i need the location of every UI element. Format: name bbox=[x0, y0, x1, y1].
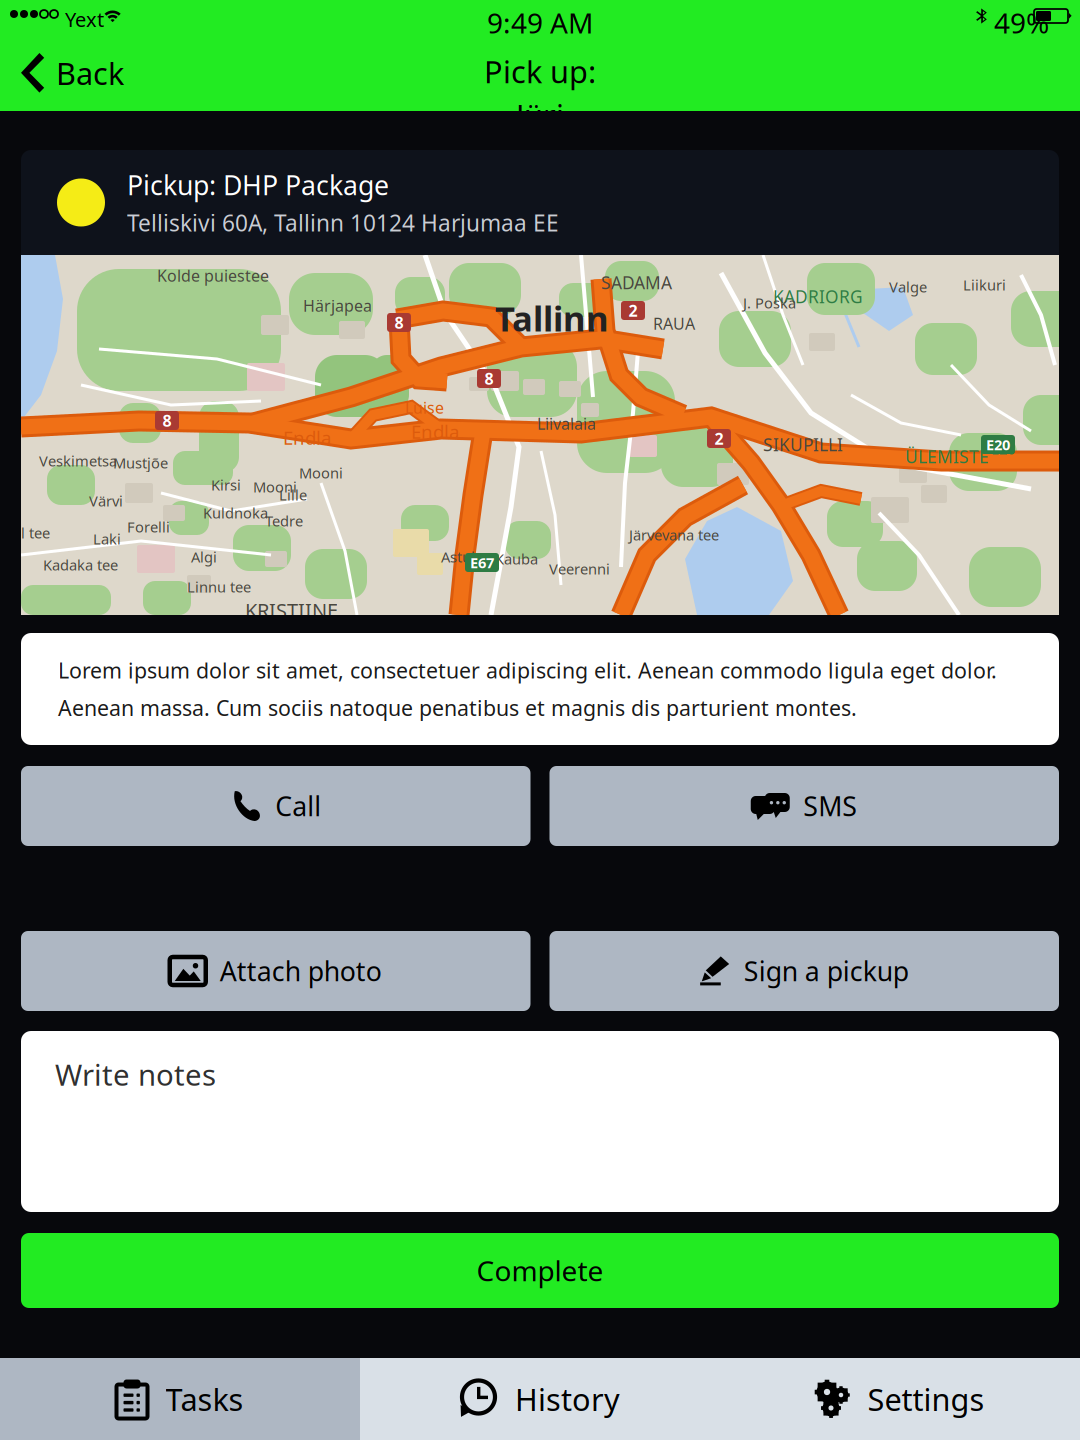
staticText: Call bbox=[275, 788, 321, 824]
staticText: Kauba bbox=[495, 549, 538, 568]
staticText: 8 bbox=[162, 410, 171, 431]
staticText: Pick up: bbox=[484, 51, 596, 92]
staticText: 8 bbox=[394, 312, 403, 333]
staticText: Pickup: DHP Package bbox=[127, 167, 389, 203]
button[interactable]: SMS bbox=[549, 766, 1059, 846]
staticText: Kuldnoka bbox=[203, 503, 268, 522]
staticText: Jüri bbox=[516, 95, 564, 135]
staticText: Järvevana tee bbox=[629, 525, 719, 544]
staticText: Astula bbox=[441, 547, 483, 566]
staticText: RAUA bbox=[653, 313, 695, 334]
button[interactable]: Back bbox=[0, 42, 148, 104]
staticText: Mustjõe bbox=[113, 453, 168, 472]
staticText: Lorem ipsum dolor sit amet, consectetuer… bbox=[58, 656, 997, 722]
staticText: J. Poska bbox=[743, 293, 796, 312]
staticText: Värvi bbox=[89, 491, 123, 510]
button[interactable]: History bbox=[360, 1358, 720, 1440]
staticText: Kadaka tee bbox=[43, 555, 118, 574]
staticText: Algi bbox=[191, 547, 217, 566]
staticText: Valge bbox=[889, 277, 927, 296]
button[interactable]: Sign a pickup bbox=[549, 931, 1059, 1011]
staticText: History bbox=[515, 1379, 620, 1419]
staticText: Luise bbox=[405, 397, 444, 418]
staticText: 2 bbox=[714, 428, 723, 449]
staticText: ÜLEMISTE bbox=[905, 445, 989, 468]
staticText: 9:49 AM bbox=[487, 4, 593, 41]
staticText: Kolde puiestee bbox=[157, 265, 269, 286]
button[interactable]: Settings bbox=[720, 1358, 1080, 1440]
staticText: E20 bbox=[986, 435, 1010, 454]
staticText: Endla bbox=[283, 425, 331, 450]
staticText: Mooni bbox=[299, 463, 343, 482]
staticText: Veerenni bbox=[549, 559, 610, 578]
staticText: Endla bbox=[411, 419, 459, 444]
staticText: KRISTIINE bbox=[245, 597, 338, 624]
staticText: Tallinn bbox=[495, 295, 609, 341]
staticText: Lille bbox=[279, 485, 307, 504]
staticText: Telliskivi 60A, Tallinn 10124 Harjumaa E… bbox=[127, 208, 559, 238]
staticText: Liivalaia bbox=[537, 413, 596, 434]
staticText: SADAMA bbox=[601, 271, 672, 294]
staticText: Yext bbox=[65, 6, 104, 33]
staticText: 8 bbox=[484, 368, 493, 389]
staticText: Complete bbox=[476, 1252, 603, 1289]
staticText: Forelli bbox=[127, 517, 170, 536]
staticText: Tasks bbox=[165, 1379, 243, 1419]
staticText: Linnu tee bbox=[187, 577, 251, 596]
staticText: Laki bbox=[93, 529, 121, 548]
staticText: Attach photo bbox=[220, 953, 382, 989]
staticText: 49% bbox=[994, 4, 1049, 41]
staticText: Kirsi bbox=[211, 475, 241, 494]
staticText: Liikuri bbox=[963, 275, 1006, 294]
staticText: Mooni bbox=[253, 477, 297, 496]
staticText: SMS bbox=[803, 788, 857, 824]
staticText: Back bbox=[56, 53, 124, 93]
staticText: Sign a pickup bbox=[744, 953, 909, 989]
staticText: Veskimetsa bbox=[39, 451, 117, 470]
button[interactable]: Call bbox=[21, 766, 530, 846]
staticText: Härjapea bbox=[303, 295, 372, 316]
staticText: KADRIORG bbox=[773, 285, 863, 308]
staticText: E67 bbox=[470, 553, 494, 572]
staticText: Tedre bbox=[265, 511, 303, 530]
staticText: 2 bbox=[628, 300, 637, 321]
button[interactable]: Write notes bbox=[21, 1031, 1059, 1212]
button[interactable]: Tasks bbox=[0, 1358, 360, 1440]
staticText: E20 bbox=[991, 439, 1015, 458]
staticText: l tee bbox=[21, 523, 50, 542]
button[interactable]: Attach photo bbox=[21, 931, 530, 1011]
staticText: Write notes bbox=[55, 1055, 216, 1094]
staticText: SIKUPILLI bbox=[763, 433, 843, 456]
staticText: Settings bbox=[867, 1379, 984, 1419]
button[interactable]: Complete bbox=[21, 1233, 1059, 1308]
